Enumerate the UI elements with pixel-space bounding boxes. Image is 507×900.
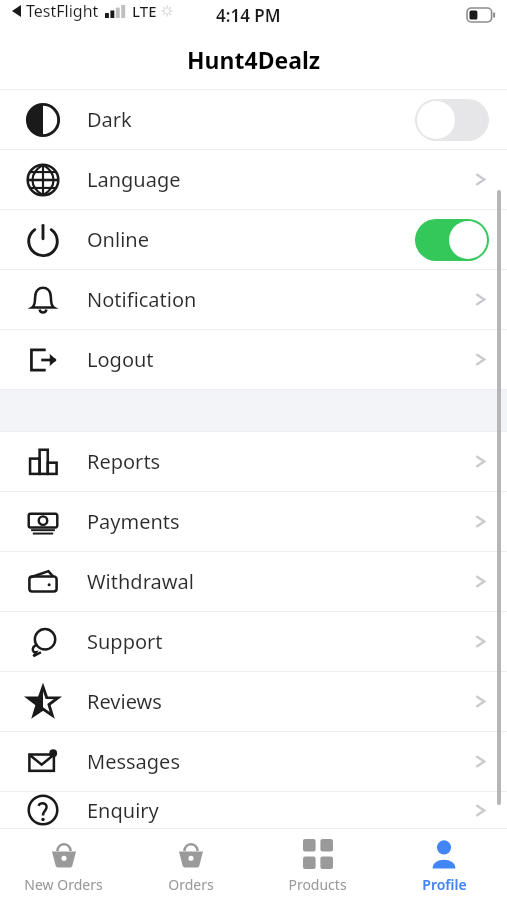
button[interactable]: Online <box>0 210 507 269</box>
button[interactable]: New Orders <box>0 829 127 894</box>
staticText: Profile <box>422 875 467 894</box>
staticText: Products <box>288 875 347 894</box>
button[interactable]: Profile <box>381 829 507 894</box>
staticText: Withdrawal <box>87 568 194 595</box>
button[interactable]: Dark mode toggle <box>415 99 489 141</box>
button[interactable]: Messages <box>0 732 507 791</box>
staticText: Support <box>87 628 163 655</box>
staticText: Logout <box>87 346 154 373</box>
staticText: Reviews <box>87 688 162 715</box>
button[interactable]: Online toggle <box>415 219 489 261</box>
staticText: 4:14 PM <box>216 4 281 27</box>
staticText: Notification <box>87 286 197 313</box>
button[interactable]: Products <box>254 829 381 894</box>
staticText: Hunt4Dealz <box>187 44 321 75</box>
button[interactable]: Payments <box>0 492 507 551</box>
staticText: Messages <box>87 748 180 775</box>
staticText: Orders <box>168 875 214 894</box>
staticText: LTE <box>132 1 157 21</box>
staticText: TestFlight <box>26 0 99 22</box>
button[interactable]: Reports <box>0 432 507 491</box>
staticText: Dark <box>87 106 132 133</box>
button[interactable]: Orders <box>127 829 254 894</box>
staticText: Reports <box>87 448 161 475</box>
button[interactable]: Enquiry <box>0 792 507 828</box>
button[interactable]: Withdrawal <box>0 552 507 611</box>
button[interactable]: Notification <box>0 270 507 329</box>
staticText: Online <box>87 226 149 253</box>
button[interactable]: Support <box>0 612 507 671</box>
staticText: New Orders <box>24 875 103 894</box>
staticText: Language <box>87 166 181 193</box>
button[interactable]: Language <box>0 150 507 209</box>
button[interactable]: Logout <box>0 330 507 389</box>
button[interactable]: Dark <box>0 90 507 149</box>
staticText: Payments <box>87 508 180 535</box>
staticText: Enquiry <box>87 797 159 824</box>
button[interactable]: Reviews <box>0 672 507 731</box>
